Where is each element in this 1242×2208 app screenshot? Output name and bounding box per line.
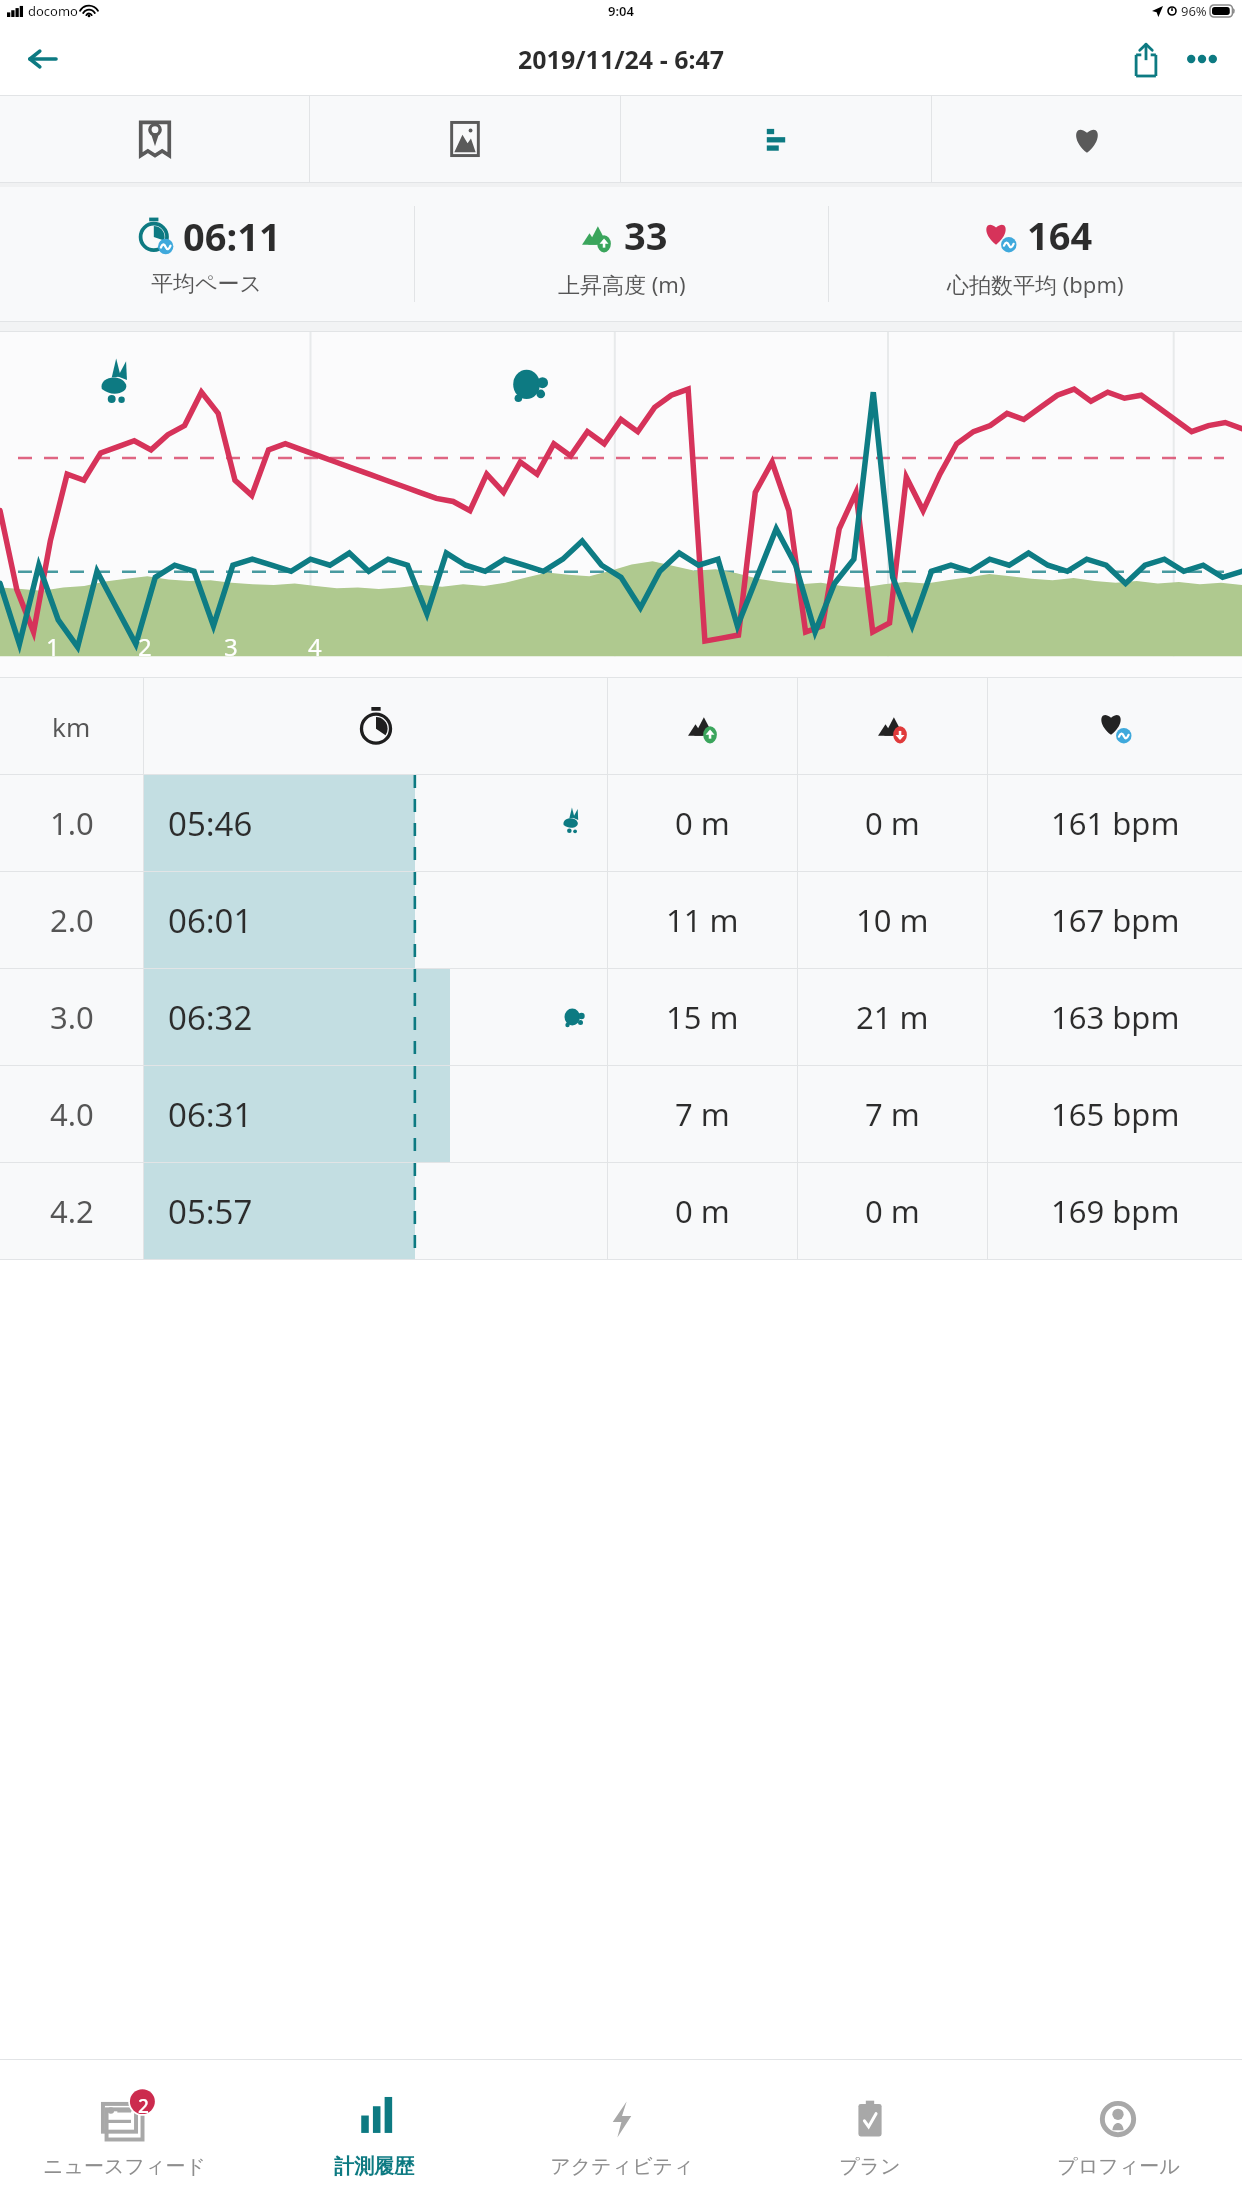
staticText: 3.0 <box>50 996 94 1038</box>
button[interactable]: プラン <box>746 2060 994 2208</box>
staticText: 06:11 <box>183 210 281 262</box>
staticText: 3 <box>224 630 238 663</box>
button[interactable]: プロフィール <box>994 2060 1242 2208</box>
staticText: 2 <box>138 630 152 663</box>
staticText: 7 m <box>865 1093 920 1135</box>
staticText: 0 m <box>865 802 920 844</box>
staticText: 4.2 <box>50 1190 94 1232</box>
staticText: 06:32 <box>168 995 253 1040</box>
staticText: 1.0 <box>50 802 94 844</box>
button[interactable]: アクティビティ <box>498 2060 746 2208</box>
button[interactable]: 4.2 <box>0 1163 1242 1259</box>
button[interactable]: 3.0 <box>0 969 1242 1065</box>
button[interactable]: 2.0 <box>0 872 1242 968</box>
staticText: プラン <box>839 2154 901 2179</box>
staticText: 161 bpm <box>1051 802 1180 844</box>
staticText: 2.0 <box>50 899 94 941</box>
staticText: 06:31 <box>168 1092 253 1137</box>
button[interactable]: Photos <box>310 96 620 182</box>
button[interactable]: 計測履歴 <box>249 2060 498 2208</box>
button[interactable]: Map <box>0 96 309 182</box>
staticText: 169 bpm <box>1051 1190 1180 1232</box>
button[interactable]: 164 <box>829 187 1242 321</box>
staticText: 2019/11/24 - 6:47 <box>518 42 725 76</box>
staticText: 21 m <box>856 996 929 1038</box>
staticText: 33 <box>624 209 668 261</box>
button[interactable]: Heart rate <box>932 96 1242 182</box>
staticText: 1 <box>46 630 60 663</box>
button[interactable]: 2 <box>0 2060 249 2208</box>
button[interactable]: Charts <box>621 96 931 182</box>
staticText: 7 m <box>675 1093 730 1135</box>
staticText: 165 bpm <box>1051 1093 1180 1135</box>
staticText: 4.0 <box>50 1093 94 1135</box>
button[interactable]: More options <box>1174 31 1230 87</box>
staticText: 平均ペース <box>151 270 263 298</box>
button[interactable]: 4.0 <box>0 1066 1242 1162</box>
staticText: 05:57 <box>168 1189 253 1234</box>
staticText: 9:04 <box>608 2 634 20</box>
button[interactable]: 33 <box>415 187 828 321</box>
staticText: 05:46 <box>168 801 253 846</box>
staticText: ニュースフィード <box>43 2154 206 2179</box>
staticText: 0 m <box>675 802 730 844</box>
staticText: 計測履歴 <box>334 2154 414 2179</box>
staticText: 15 m <box>666 996 739 1038</box>
button[interactable]: 06:11 <box>0 187 414 321</box>
staticText: 164 <box>1027 209 1093 261</box>
staticText: 心拍数平均 (bpm) <box>947 269 1124 299</box>
staticText: プロフィール <box>1057 2154 1180 2179</box>
staticText: 0 m <box>865 1190 920 1232</box>
button[interactable]: 1.0 <box>0 775 1242 871</box>
staticText: 4 <box>308 630 322 663</box>
staticText: 167 bpm <box>1051 899 1180 941</box>
staticText: 上昇高度 (m) <box>558 269 686 299</box>
staticText: 10 m <box>856 899 929 941</box>
staticText: km <box>52 709 91 744</box>
staticText: 0 m <box>675 1190 730 1232</box>
staticText: 2 <box>138 2093 149 2119</box>
button[interactable]: Back <box>14 31 70 87</box>
staticText: docomo <box>28 2 78 20</box>
staticText: 96% <box>1181 2 1207 20</box>
staticText: 11 m <box>666 899 739 941</box>
staticText: 06:01 <box>168 898 253 943</box>
staticText: 163 bpm <box>1051 996 1180 1038</box>
staticText: アクティビティ <box>550 2154 694 2179</box>
button[interactable]: Share <box>1118 31 1174 87</box>
